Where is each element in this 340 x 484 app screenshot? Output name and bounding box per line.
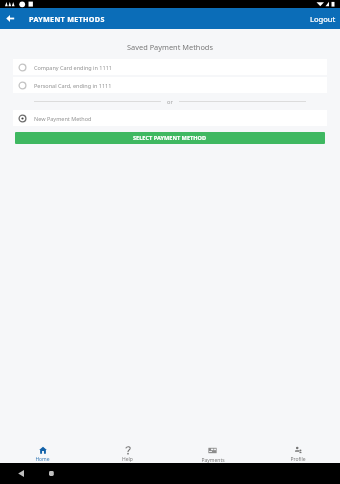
button[interactable]: SELECT PAYMENT METHOD xyxy=(15,132,325,144)
staticText: SELECT PAYMENT METHOD xyxy=(133,134,207,142)
staticText: Help xyxy=(122,456,133,463)
staticText: Payments xyxy=(201,457,225,463)
button[interactable]: Back xyxy=(0,8,21,29)
staticText: Home xyxy=(35,456,50,463)
button[interactable]: Logout xyxy=(300,8,340,29)
staticText: Personal Card, ending in 1111 xyxy=(34,82,112,89)
button[interactable]: Help xyxy=(85,433,170,463)
staticText: Profile xyxy=(290,456,306,463)
button[interactable]: New Payment Method xyxy=(13,110,327,126)
button[interactable]: Home xyxy=(0,433,85,463)
button[interactable]: Payments xyxy=(170,433,255,463)
staticText: Saved Payment Methods xyxy=(0,42,340,52)
staticText: or xyxy=(167,98,173,106)
staticText: PAYMENT METHODS xyxy=(29,14,105,24)
button[interactable]: Profile xyxy=(255,433,340,463)
staticText: Logout xyxy=(310,14,336,24)
staticText: Company Card ending in 1111 xyxy=(34,64,112,71)
button[interactable]: Company Card ending in 1111 xyxy=(13,59,327,75)
staticText: New Payment Method xyxy=(34,115,92,122)
button[interactable]: Personal Card, ending in 1111 xyxy=(13,77,327,93)
